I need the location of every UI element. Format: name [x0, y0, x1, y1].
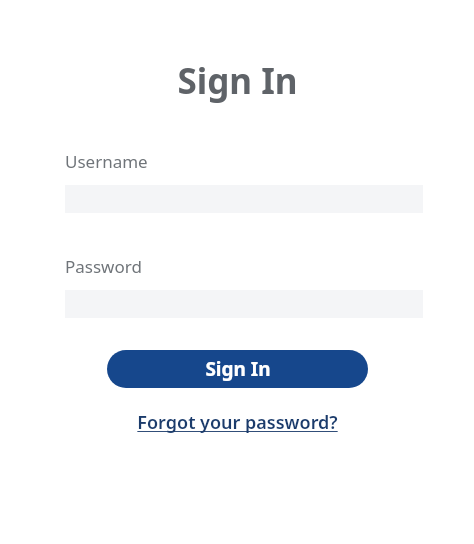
staticText: Sign In [177, 57, 298, 105]
staticText: Username [65, 150, 148, 173]
staticText: Password [65, 255, 142, 278]
staticText: Forgot your password? [137, 410, 338, 435]
button[interactable]: Sign In [107, 350, 368, 388]
button[interactable]: Forgot your password? [133, 408, 342, 437]
staticText: Sign In [205, 356, 271, 382]
